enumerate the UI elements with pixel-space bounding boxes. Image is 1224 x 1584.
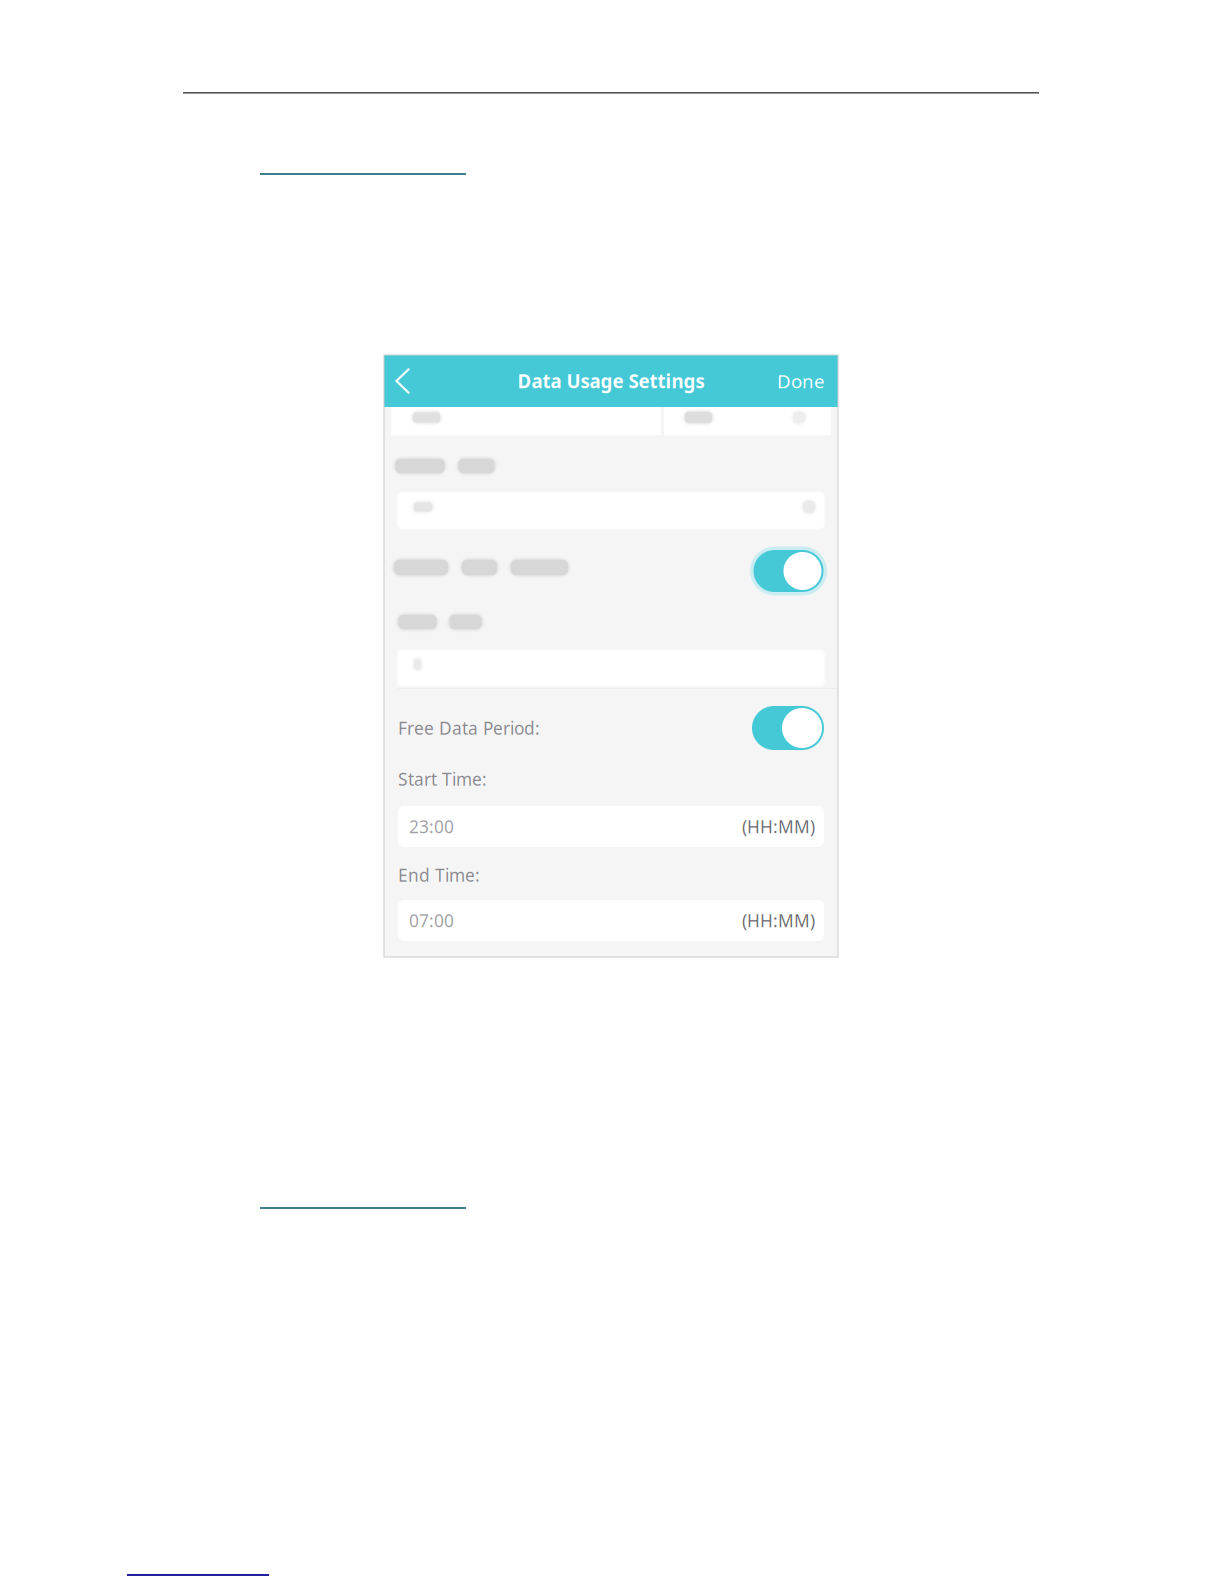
button[interactable]: Free Data Period: [398, 706, 824, 750]
button[interactable]: 23:00 [398, 806, 824, 847]
staticText: (HH:MM) [742, 815, 815, 838]
button[interactable]: 07:00 [398, 900, 824, 941]
staticText: Start Time: [398, 767, 487, 790]
staticText: End Time: [398, 863, 480, 886]
button[interactable]: Back [384, 355, 422, 407]
staticText: 23:00 [409, 815, 454, 838]
staticText: 07:00 [409, 909, 454, 932]
staticText: Data Usage Settings [517, 369, 704, 393]
staticText: Done [777, 369, 825, 393]
staticText: (HH:MM) [742, 909, 815, 932]
button[interactable]: Done [777, 355, 838, 407]
staticText: Free Data Period: [398, 716, 540, 739]
